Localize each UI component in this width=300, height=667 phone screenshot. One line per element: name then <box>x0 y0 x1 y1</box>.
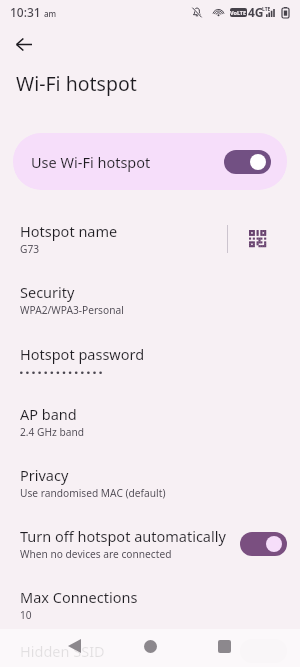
button[interactable]: Recents <box>202 627 247 665</box>
staticText: AP band <box>20 404 77 424</box>
staticText: When no devices are connected <box>20 547 172 561</box>
button[interactable]: Use Wi-Fi hotspot <box>13 133 287 190</box>
button[interactable]: AP band <box>0 391 300 452</box>
staticText: Hidden SSID <box>20 641 105 661</box>
staticText: G73 <box>20 242 40 256</box>
staticText: 4G <box>248 4 264 20</box>
button[interactable]: Max Connections <box>0 574 300 635</box>
staticText: Use randomised MAC (default) <box>20 486 166 500</box>
staticText: Wi-Fi hotspot <box>16 70 137 97</box>
staticText: Hotspot name <box>20 221 118 241</box>
staticText: VoLTE <box>230 9 247 16</box>
button[interactable]: Turn off hotspot automatically <box>0 513 300 574</box>
button[interactable]: Share Wi-Fi QR code <box>236 217 279 260</box>
staticText: Use Wi-Fi hotspot <box>31 152 151 172</box>
button[interactable]: Back <box>52 627 97 665</box>
button[interactable]: Hotspot name <box>0 208 300 269</box>
button[interactable]: Hidden SSID <box>0 635 300 667</box>
staticText: am <box>44 8 57 19</box>
staticText: LTE <box>262 6 271 13</box>
button[interactable]: Privacy <box>0 452 300 513</box>
staticText: 2.4 GHz band <box>20 425 84 439</box>
staticText: Turn off hotspot automatically <box>20 526 226 546</box>
button[interactable]: Security <box>0 269 300 330</box>
staticText: Security <box>20 282 75 302</box>
staticText: Hotspot password <box>20 344 145 364</box>
staticText: 10 <box>20 608 32 622</box>
staticText: Max Connections <box>20 587 138 607</box>
button[interactable]: Home <box>128 627 173 665</box>
staticText: WPA2/WPA3-Personal <box>20 303 124 317</box>
button[interactable]: Hotspot password <box>0 330 300 391</box>
staticText: Privacy <box>20 465 69 485</box>
button[interactable]: Back <box>4 24 44 64</box>
staticText: 10:31 <box>10 4 41 20</box>
